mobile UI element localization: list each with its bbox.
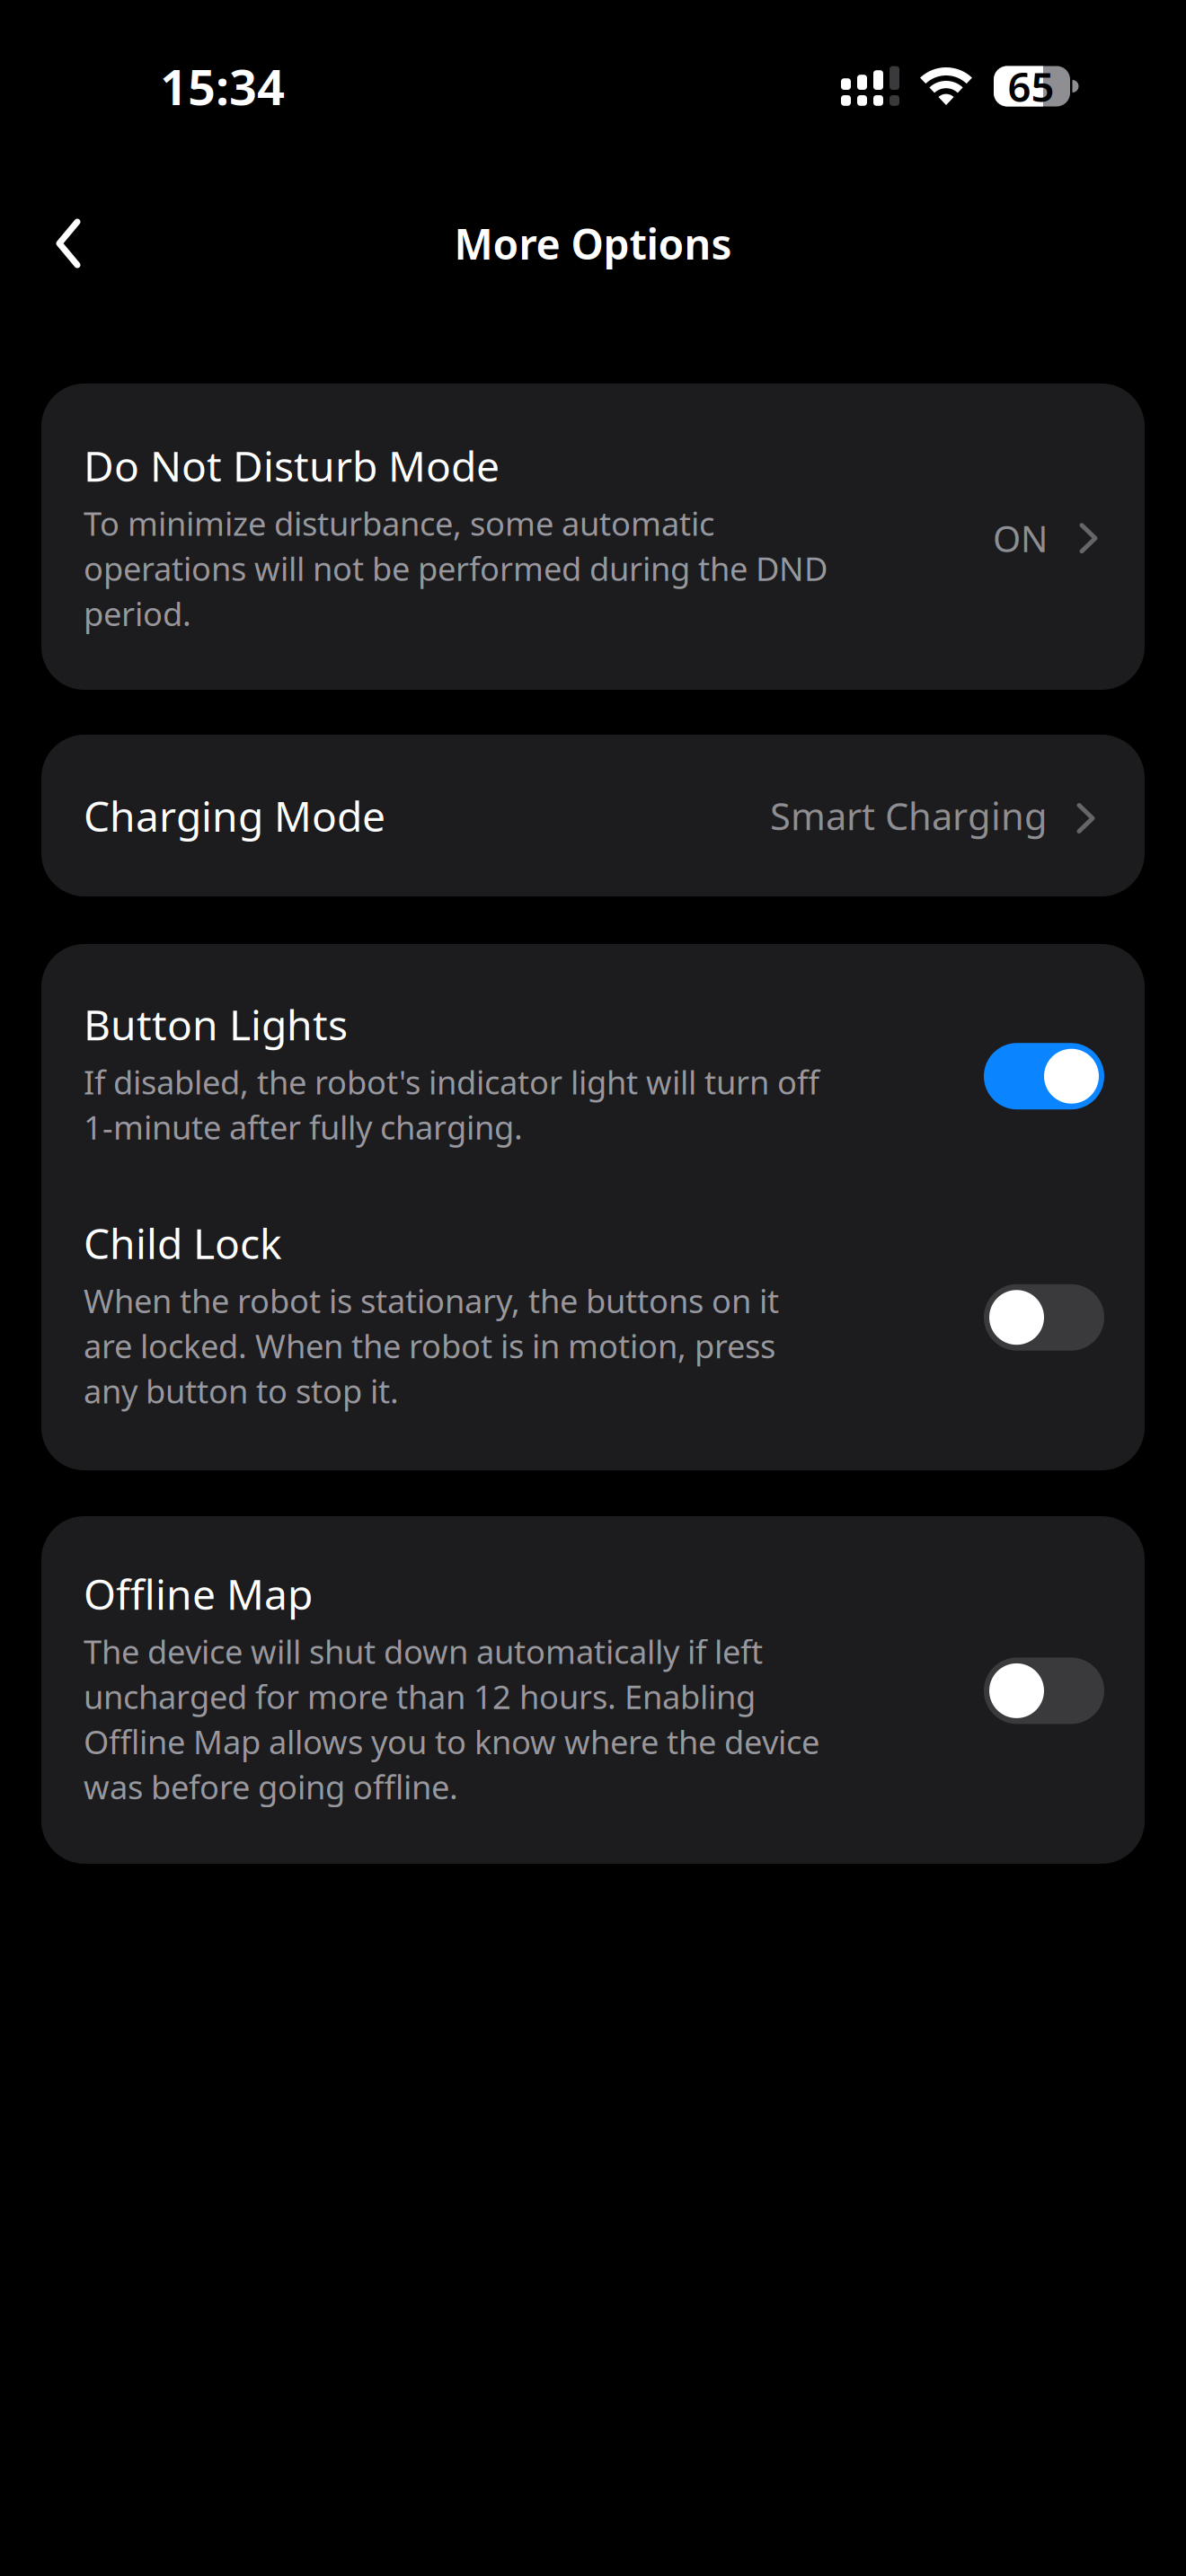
- staticText: When the robot is stationary, the button…: [84, 1278, 779, 1413]
- staticText: Smart Charging: [770, 790, 1048, 841]
- button[interactable]: Charging Mode: [41, 735, 1145, 896]
- staticText: ON: [993, 514, 1048, 563]
- staticText: Offline Map: [84, 1566, 313, 1622]
- staticText: Button Lights: [84, 996, 348, 1052]
- button[interactable]: Button Lights: [984, 1039, 1104, 1106]
- button[interactable]: Child Lock: [984, 1281, 1104, 1347]
- staticText: More Options: [454, 215, 732, 272]
- button[interactable]: Offline Map: [984, 1654, 1104, 1720]
- staticText: If disabled, the robot's indicator light…: [84, 1060, 819, 1149]
- staticText: Do Not Disturb Mode: [84, 437, 500, 494]
- button[interactable]: Back: [38, 204, 102, 283]
- staticText: To minimize disturbance, some automatic …: [84, 501, 828, 636]
- staticText: 15:34: [160, 53, 285, 119]
- staticText: Child Lock: [84, 1215, 282, 1271]
- button[interactable]: Do Not Disturb Mode: [41, 384, 1145, 690]
- staticText: Charging Mode: [84, 787, 385, 844]
- staticText: The device will shut down automatically …: [84, 1629, 819, 1809]
- staticText: 65: [1008, 58, 1054, 114]
